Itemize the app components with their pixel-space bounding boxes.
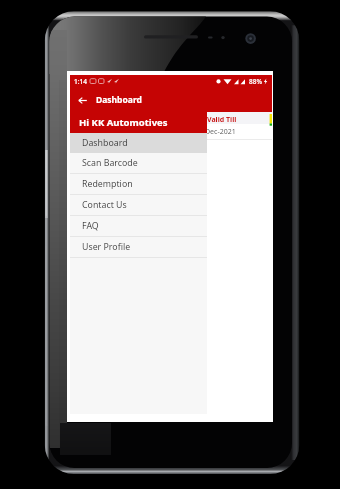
button[interactable]: User Profile [70,237,207,257]
staticText: Valid Till [207,115,237,125]
button[interactable]: Back [75,93,89,107]
staticText: FAQ [82,220,99,232]
staticText: Contact Us [82,199,127,211]
staticText: Redemption [82,178,133,190]
button[interactable]: Scan Barcode [70,153,207,173]
staticText: Scan Barcode [82,157,138,169]
staticText: Dashboard [96,94,142,106]
staticText: Dashboard [82,137,128,149]
button[interactable]: FAQ [70,216,207,236]
staticText: User Profile [82,241,131,253]
staticText: 88% [249,77,262,86]
button[interactable]: Dashboard [70,133,207,153]
button[interactable]: Redemption [70,174,207,194]
staticText: Hi KK Automotives [79,116,168,129]
staticText: 1:14 [74,77,87,86]
staticText: Dec-2021 [205,127,236,137]
button[interactable]: Contact Us [70,195,207,215]
